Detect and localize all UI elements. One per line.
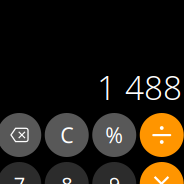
button[interactable]: 7 — [0, 162, 41, 184]
staticText: 7 — [14, 171, 25, 184]
staticText: 9 — [109, 171, 120, 184]
staticText: 1 488 — [97, 65, 182, 109]
button[interactable]: 8 — [45, 162, 89, 184]
button[interactable]: C — [45, 113, 89, 157]
button[interactable]: % — [92, 113, 136, 157]
staticText: 8 — [61, 171, 72, 184]
button[interactable]: Delete — [0, 113, 41, 157]
staticText: % — [105, 121, 123, 149]
button[interactable]: Divide — [140, 113, 184, 157]
button[interactable]: 9 — [92, 162, 136, 184]
button[interactable]: Multiply — [140, 162, 184, 184]
staticText: C — [60, 121, 73, 149]
